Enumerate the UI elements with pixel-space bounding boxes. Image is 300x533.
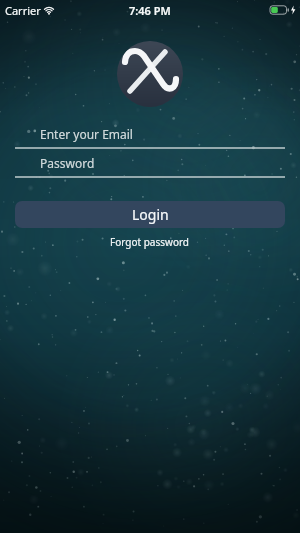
button[interactable]: Enter your Email bbox=[15, 126, 285, 149]
staticText: Password bbox=[40, 155, 95, 171]
staticText: 7:46 PM bbox=[129, 3, 171, 18]
button[interactable]: Login bbox=[15, 201, 285, 228]
staticText: Carrier bbox=[5, 3, 41, 18]
staticText: Forgot password bbox=[110, 235, 190, 249]
button[interactable]: Forgot password bbox=[104, 233, 196, 251]
staticText: Login bbox=[132, 205, 169, 224]
staticText: Enter your Email bbox=[40, 126, 133, 142]
button[interactable]: Password bbox=[15, 155, 285, 178]
